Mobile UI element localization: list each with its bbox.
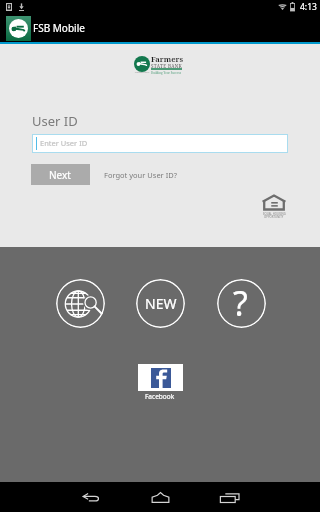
button[interactable]: Forgot your User ID? bbox=[100, 164, 181, 185]
button[interactable]: Enter User ID bbox=[32, 134, 288, 153]
staticText: User ID bbox=[32, 112, 78, 130]
staticText: EQUAL HOUSING bbox=[263, 212, 286, 216]
staticText: OPPORTUNITY bbox=[264, 215, 284, 219]
staticText: Facebook bbox=[145, 392, 175, 401]
button[interactable]: FSB Mobile bbox=[0, 14, 320, 42]
staticText: Enter User ID bbox=[40, 138, 88, 148]
button[interactable]: Recent apps bbox=[199, 482, 259, 512]
button[interactable]: Find a location bbox=[56, 279, 105, 328]
staticText: Building Your Success bbox=[151, 71, 182, 75]
button[interactable]: Home bbox=[130, 482, 190, 512]
staticText: NEW bbox=[145, 294, 177, 313]
button[interactable]: What is new bbox=[136, 279, 185, 328]
button[interactable]: Back bbox=[62, 482, 122, 512]
staticText: Forgot your User ID? bbox=[104, 170, 177, 180]
staticText: 4:13 bbox=[300, 1, 317, 13]
staticText: ? bbox=[233, 280, 248, 326]
button[interactable]: Facebook bbox=[137, 364, 183, 401]
button[interactable]: Next bbox=[31, 164, 90, 185]
staticText: Next bbox=[49, 168, 71, 182]
staticText: FSB Mobile bbox=[33, 21, 85, 35]
staticText: STATE BANK bbox=[151, 63, 183, 69]
staticText: MEMBER FDIC bbox=[134, 71, 150, 74]
button[interactable]: Help bbox=[217, 279, 266, 328]
staticText: Farmers bbox=[151, 54, 183, 64]
